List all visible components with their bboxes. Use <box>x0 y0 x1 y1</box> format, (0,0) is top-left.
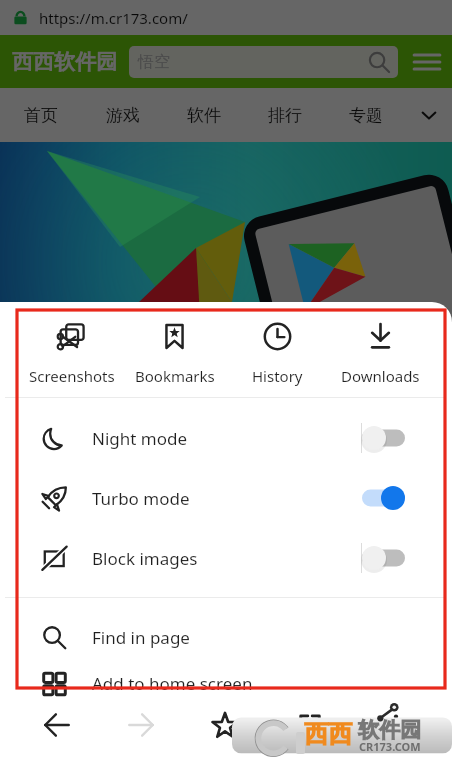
button[interactable]: Block images <box>0 528 452 588</box>
button[interactable]: Menu <box>412 47 442 77</box>
button[interactable]: Forward <box>117 701 165 749</box>
staticText: 软件园 <box>358 717 421 743</box>
staticText: History <box>252 366 303 386</box>
staticText: 软件 <box>187 105 221 126</box>
staticText: 专题 <box>349 105 383 126</box>
button[interactable]: Bookmarks <box>123 302 226 397</box>
button[interactable]: More options <box>372 701 420 749</box>
button[interactable]: 首页 <box>0 88 82 142</box>
button[interactable]: Off <box>362 416 430 460</box>
button[interactable]: Night mode <box>0 408 452 468</box>
button[interactable]: More categories <box>406 88 452 142</box>
button[interactable]: Off <box>362 536 430 580</box>
button[interactable]: History <box>226 302 329 397</box>
button[interactable]: Screenshots <box>20 302 123 397</box>
staticText: 首页 <box>24 105 58 126</box>
staticText: Bookmarks <box>135 366 215 386</box>
button[interactable]: Downloads <box>329 302 432 397</box>
button[interactable]: Tabs <box>286 701 334 749</box>
button[interactable]: 软件 <box>163 88 244 142</box>
staticText: Night mode <box>92 427 188 450</box>
staticText: 游戏 <box>106 105 140 126</box>
button[interactable]: 悟空 <box>129 46 398 78</box>
button[interactable]: Find in page <box>0 607 452 667</box>
staticText: Block images <box>92 547 198 570</box>
staticText: Downloads <box>341 366 420 386</box>
staticText: CR173.COM <box>359 739 421 754</box>
button[interactable]: 专题 <box>325 88 406 142</box>
staticText: 排行 <box>268 105 302 126</box>
staticText: Add to home screen <box>92 672 253 695</box>
staticText: Find in page <box>92 626 190 649</box>
staticText: https://m.cr173.com/ <box>39 8 188 28</box>
staticText: 悟空 <box>138 52 170 72</box>
staticText: Screenshots <box>29 366 115 386</box>
button[interactable]: On <box>362 476 430 520</box>
button[interactable]: Bookmarks <box>201 701 249 749</box>
button[interactable]: 排行 <box>244 88 325 142</box>
staticText: 西西软件园 <box>12 49 117 75</box>
button[interactable]: Back <box>33 701 81 749</box>
button[interactable]: Turbo mode <box>0 468 452 528</box>
button[interactable]: 游戏 <box>82 88 163 142</box>
button[interactable]: Add to home screen <box>0 667 452 700</box>
staticText: 西西 <box>304 719 352 749</box>
staticText: Turbo mode <box>92 487 190 510</box>
